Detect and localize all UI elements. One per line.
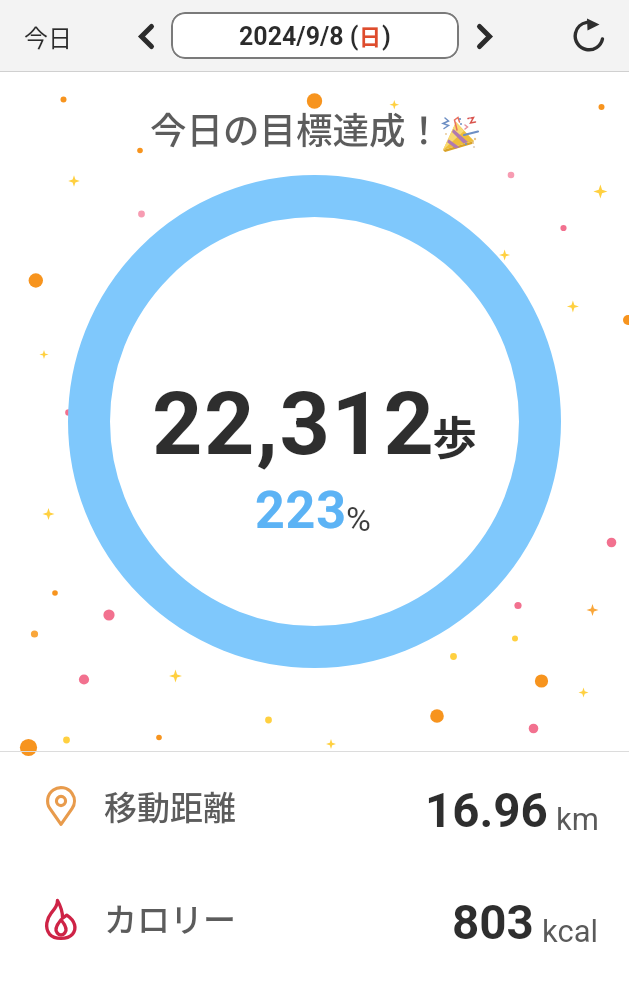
staticText: 22,312 (152, 372, 436, 475)
staticText: ) (382, 22, 391, 51)
button[interactable]: 2024/9/8 ( (171, 12, 459, 59)
staticText: 今日 (24, 19, 72, 54)
staticText: 歩 (432, 403, 478, 468)
staticText: 2024/9/8 ( (239, 22, 359, 51)
staticText: 16.96 (425, 783, 548, 839)
button[interactable]: Previous day (124, 0, 168, 72)
staticText: カロリー (104, 894, 236, 942)
staticText: 移動距離 (104, 782, 236, 830)
staticText: 日 (359, 19, 382, 51)
button[interactable]: Next day (462, 0, 506, 72)
staticText: 223 (255, 480, 347, 541)
button[interactable]: Refresh (565, 0, 613, 72)
button[interactable]: 移動距離 (0, 752, 629, 864)
staticText: 803 (452, 895, 534, 951)
staticText: kcal (542, 913, 599, 949)
button[interactable]: カロリー (0, 864, 629, 976)
button[interactable]: 今日 (24, 0, 72, 72)
staticText: 今日の目標達成！ (150, 102, 442, 155)
staticText: km (556, 801, 599, 837)
staticText: % (346, 499, 371, 539)
